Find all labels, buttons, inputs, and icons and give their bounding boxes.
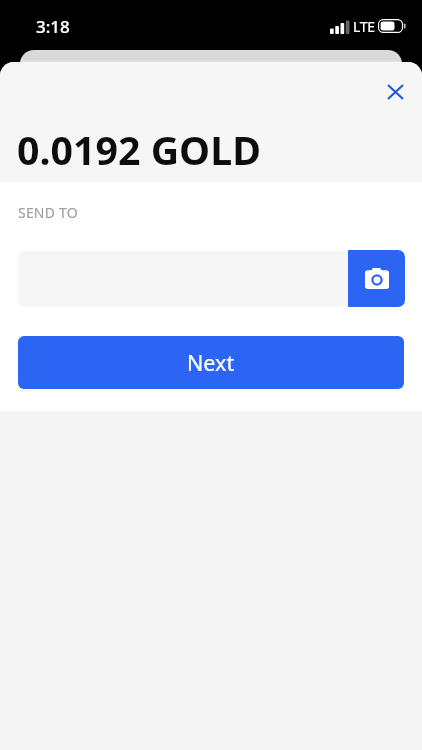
button[interactable]: Close [373, 70, 417, 114]
button[interactable]: Scan address with camera [348, 250, 405, 307]
button[interactable]: Next [18, 336, 404, 389]
staticText: SEND TO [18, 203, 78, 222]
staticText: 3:18 [36, 15, 70, 38]
staticText: LTE [353, 17, 375, 36]
staticText: Next [187, 348, 235, 377]
staticText: 0.0192 GOLD [17, 123, 261, 177]
